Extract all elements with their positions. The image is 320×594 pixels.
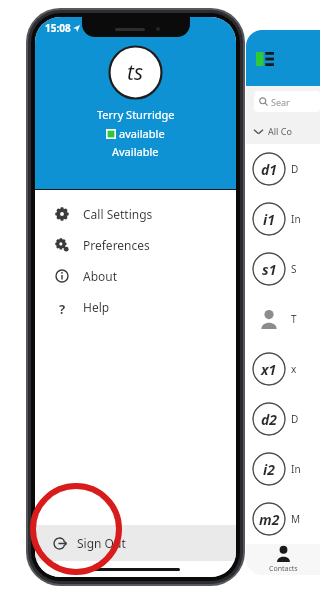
staticText: d2 xyxy=(261,410,278,429)
staticText: D xyxy=(291,162,299,176)
staticText: In xyxy=(291,462,301,476)
staticText: In xyxy=(291,212,301,226)
button[interactable]: All Co xyxy=(254,118,320,144)
staticText: x1 xyxy=(261,360,277,379)
staticText: D xyxy=(291,412,299,426)
staticText: x xyxy=(291,362,297,376)
staticText: T xyxy=(291,312,297,326)
staticText: Available xyxy=(112,144,159,159)
staticText: Preferences xyxy=(83,237,150,253)
staticText: S xyxy=(291,262,297,276)
button[interactable]: d1 xyxy=(252,144,320,194)
button[interactable]: ? xyxy=(55,291,236,322)
staticText: Terry Sturridge xyxy=(97,107,175,122)
staticText: 15:08 xyxy=(45,21,71,35)
staticText: All Co xyxy=(268,125,292,137)
staticText: i1 xyxy=(263,210,275,229)
staticText: m2 xyxy=(259,510,280,529)
staticText: d1 xyxy=(261,160,278,179)
button[interactable]: T xyxy=(252,294,320,344)
staticText: s1 xyxy=(262,260,277,279)
button[interactable]: m2 xyxy=(252,494,320,544)
button[interactable]: Call Settings xyxy=(55,198,236,229)
other: Contacts list xyxy=(256,52,274,66)
button[interactable]: s1 xyxy=(252,244,320,294)
staticText: ? xyxy=(59,300,66,314)
staticText: M xyxy=(291,512,301,526)
staticText: Call Settings xyxy=(83,206,153,222)
button[interactable]: Sign Out xyxy=(53,525,236,561)
staticText: About xyxy=(83,268,118,284)
button[interactable]: About xyxy=(55,260,236,291)
staticText: Sign Out xyxy=(77,535,126,551)
staticText: ts xyxy=(127,58,144,87)
staticText: i2 xyxy=(263,460,275,479)
button[interactable]: Contacts xyxy=(246,544,320,575)
staticText: Sear xyxy=(271,96,290,108)
button[interactable]: d2 xyxy=(252,394,320,444)
button[interactable]: i1 xyxy=(252,194,320,244)
staticText: Contacts xyxy=(269,564,298,574)
button[interactable]: Sear xyxy=(254,91,320,112)
button[interactable]: Preferences xyxy=(55,229,236,260)
staticText: Help xyxy=(83,299,110,315)
button[interactable]: x1 xyxy=(252,344,320,394)
button[interactable]: i2 xyxy=(252,444,320,494)
staticText: available xyxy=(119,126,165,141)
